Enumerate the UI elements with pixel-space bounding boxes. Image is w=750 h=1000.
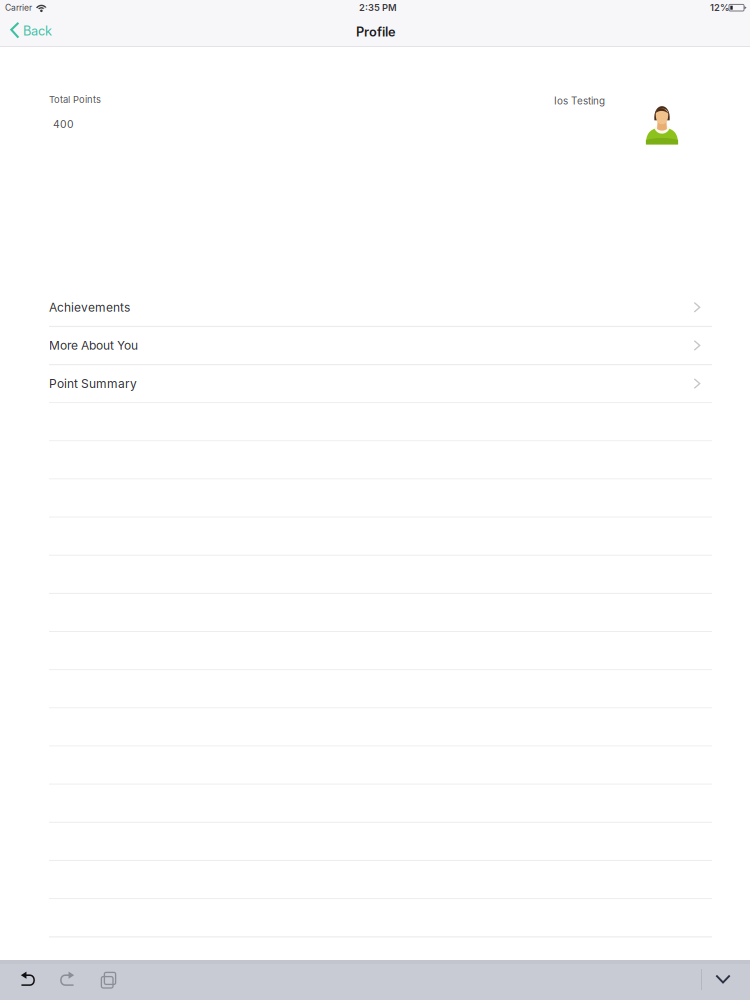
button[interactable]: Back	[0, 15, 52, 46]
staticText: Point Summary	[49, 376, 137, 391]
staticText: 400	[53, 118, 74, 131]
staticText: 2:35 PM	[359, 2, 397, 13]
button[interactable]: Undo	[8, 959, 48, 999]
staticText: More About You	[49, 338, 138, 353]
button[interactable]: Redo	[47, 959, 87, 999]
staticText: Achievements	[49, 300, 130, 314]
button[interactable]: Paste	[87, 958, 127, 998]
staticText: Back	[23, 23, 52, 38]
staticText: Profile	[356, 24, 396, 39]
staticText: Carrier	[5, 2, 32, 13]
staticText: Ios Testing	[554, 95, 605, 107]
button[interactable]: Achievements	[49, 289, 712, 327]
button[interactable]: Hide keyboard	[703, 959, 743, 999]
staticText: 12%	[710, 2, 729, 13]
button[interactable]: More About You	[49, 327, 712, 365]
staticText: Total Points	[49, 94, 101, 105]
button[interactable]: Point Summary	[49, 365, 712, 403]
